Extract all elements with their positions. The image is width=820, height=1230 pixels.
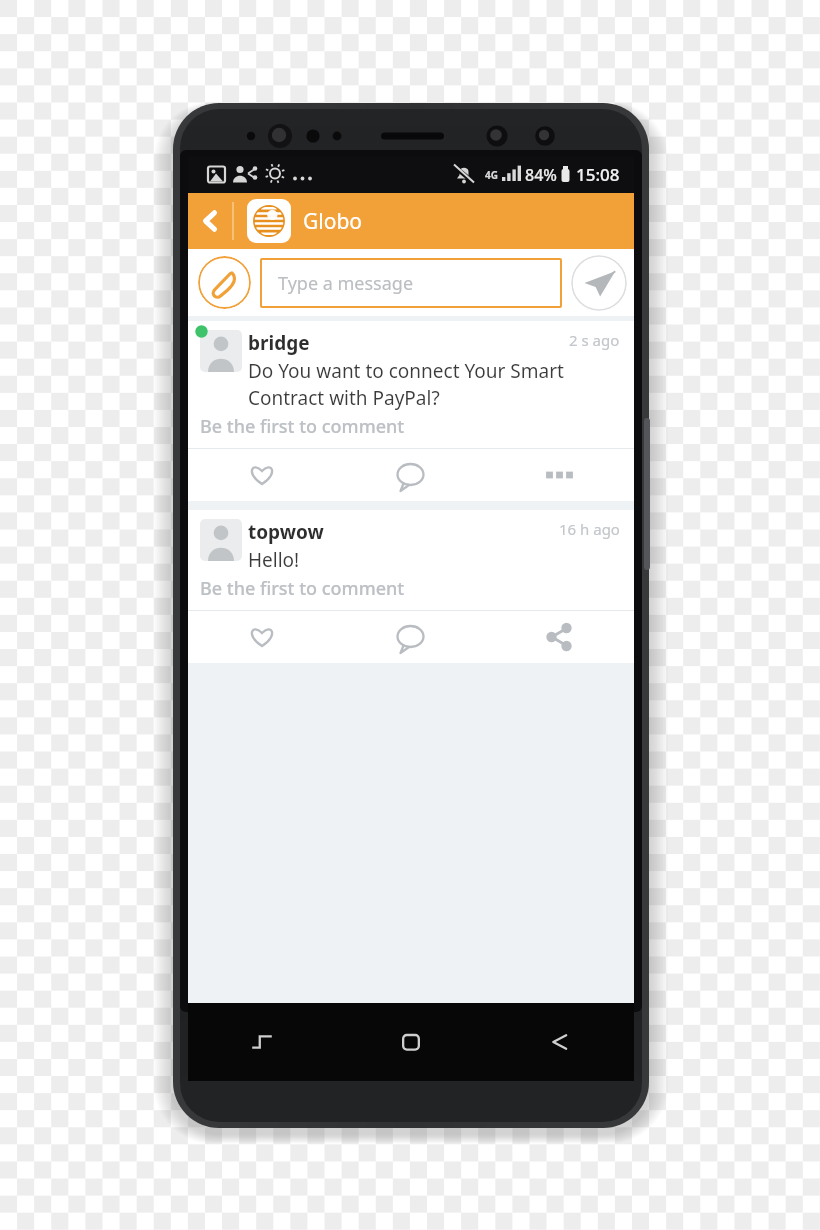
staticText: 16 h ago xyxy=(559,519,620,539)
staticText: Type a message xyxy=(278,271,414,296)
staticText: Do You want to connect Your Smart Contra… xyxy=(248,358,620,411)
button[interactable]: Recent apps xyxy=(188,1003,336,1081)
staticText: 15:08 xyxy=(576,163,620,186)
staticText: bridge xyxy=(248,330,310,356)
staticText: topwow xyxy=(248,519,324,545)
button[interactable]: Like xyxy=(188,449,336,501)
staticText: Be the first to comment xyxy=(200,414,405,439)
button[interactable]: More options xyxy=(485,449,634,501)
button[interactable]: Attach file xyxy=(198,256,251,309)
button[interactable]: Share xyxy=(485,611,634,663)
button[interactable]: Like xyxy=(188,611,336,663)
button[interactable]: Send xyxy=(571,255,627,311)
staticText: 84% xyxy=(525,164,557,186)
staticText: 4G xyxy=(485,168,498,182)
button[interactable]: Comment xyxy=(336,449,485,501)
button[interactable]: topwow xyxy=(188,510,634,663)
button[interactable]: Home xyxy=(336,1003,485,1081)
staticText: Be the first to comment xyxy=(200,576,405,601)
staticText: Hello! xyxy=(248,547,620,573)
button[interactable]: bridge xyxy=(188,321,634,501)
button[interactable]: Back xyxy=(485,1003,634,1081)
button[interactable]: Type a message xyxy=(260,258,562,308)
button[interactable]: Comment xyxy=(336,611,485,663)
staticText: Globo xyxy=(303,207,363,236)
staticText: 2 s ago xyxy=(569,330,620,350)
button[interactable]: Back xyxy=(188,193,232,249)
